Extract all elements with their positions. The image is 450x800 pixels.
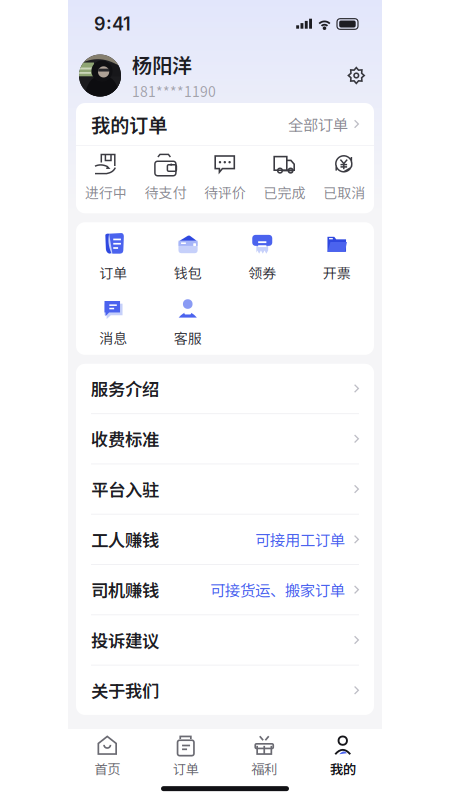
button[interactable]: 已完成	[255, 153, 314, 202]
staticText: 进行中	[85, 182, 127, 202]
staticText: 服务介绍	[91, 376, 159, 401]
staticText: 客服	[174, 327, 202, 348]
staticText: 已取消	[323, 182, 365, 202]
staticText: 已完成	[264, 182, 306, 202]
staticText: 开票	[323, 262, 351, 283]
button[interactable]: 我的	[303, 735, 382, 778]
button[interactable]: 平台入驻	[76, 464, 374, 515]
button[interactable]: 领券	[225, 231, 299, 283]
staticText: 可接货运、搬家订单	[210, 579, 345, 601]
button[interactable]: 首页	[68, 735, 146, 778]
button[interactable]: 消息	[76, 296, 150, 348]
staticText: 订单	[99, 262, 127, 283]
staticText: 订单	[173, 759, 199, 778]
button[interactable]: 开票	[299, 231, 374, 283]
staticText: 消息	[99, 327, 127, 348]
staticText: 平台入驻	[91, 476, 159, 502]
button[interactable]: 待评价	[195, 153, 255, 202]
staticText: 待评价	[204, 182, 246, 202]
staticText: 可接用工订单	[255, 528, 345, 550]
staticText: 待支付	[144, 182, 186, 202]
staticText: 司机赚钱	[91, 577, 159, 602]
button[interactable]: 订单	[146, 735, 225, 778]
staticText: 领券	[248, 262, 276, 283]
button[interactable]: 客服	[150, 296, 225, 348]
button[interactable]: 进行中	[76, 153, 136, 202]
button[interactable]: 服务介绍	[76, 364, 374, 414]
staticText: 我的	[330, 759, 356, 778]
staticText: 杨阳洋	[132, 50, 192, 79]
button[interactable]: 设置	[348, 67, 365, 84]
button[interactable]: 杨阳洋	[79, 50, 216, 101]
staticText: 投诉建议	[91, 627, 159, 652]
button[interactable]: 关于我们	[76, 666, 374, 715]
staticText: 9:41	[94, 13, 131, 35]
staticText: 我的订单	[91, 110, 167, 138]
staticText: 收费标准	[91, 426, 159, 451]
button[interactable]: 司机赚钱	[76, 565, 374, 615]
button[interactable]: 福利	[225, 735, 303, 778]
button[interactable]: 收费标准	[76, 414, 374, 464]
button[interactable]: 工人赚钱	[76, 515, 374, 565]
button[interactable]: 已取消	[314, 153, 374, 202]
staticText: 工人赚钱	[91, 527, 159, 552]
button[interactable]: 待支付	[136, 153, 195, 202]
staticText: 钱包	[174, 262, 202, 283]
button[interactable]: 我的订单	[76, 103, 374, 145]
button[interactable]: 投诉建议	[76, 615, 374, 666]
staticText: 全部订单	[288, 113, 348, 135]
button[interactable]: 钱包	[150, 231, 225, 283]
staticText: 关于我们	[91, 678, 159, 703]
button[interactable]: 订单	[76, 231, 150, 283]
staticText: 首页	[94, 759, 120, 778]
staticText: 181****1190	[132, 81, 216, 101]
staticText: 福利	[251, 759, 277, 778]
